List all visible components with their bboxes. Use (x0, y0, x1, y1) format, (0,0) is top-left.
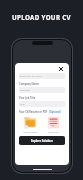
button[interactable]: (Optional) (49, 110, 61, 113)
staticText: Enter your full name (20, 75, 43, 78)
staticText: Resume Builder (19, 131, 42, 134)
staticText: Your Job Title (19, 96, 36, 100)
button[interactable]: Company (19, 87, 65, 93)
staticText: Company Name (19, 82, 39, 86)
staticText: Title (20, 103, 25, 106)
staticText: Upload PDF (42, 131, 65, 134)
button[interactable]: Close (57, 65, 65, 73)
button[interactable]: Title (19, 101, 65, 107)
button[interactable]: Upload PDF (42, 115, 65, 134)
staticText: UPLOAD YOUR CV (0, 13, 83, 21)
button[interactable]: Resume Builder (19, 115, 42, 134)
button[interactable]: Enter your full name (19, 73, 65, 79)
staticText: Explore Solution (31, 139, 53, 143)
staticText: Company (20, 89, 31, 92)
staticText: Your CV/Resume or PDF (19, 110, 49, 113)
button[interactable]: Explore Solution (19, 136, 65, 145)
